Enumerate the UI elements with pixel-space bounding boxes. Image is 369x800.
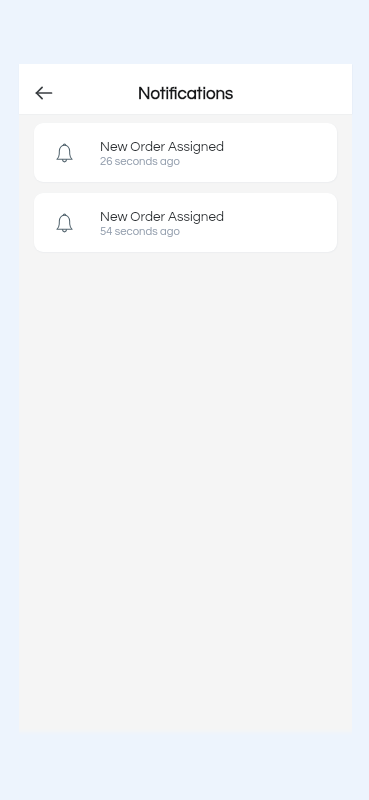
button[interactable]: New Order Assigned — [34, 193, 337, 252]
staticText: 54 seconds ago — [100, 226, 180, 238]
button[interactable]: New Order Assigned — [34, 123, 337, 182]
staticText: 26 seconds ago — [100, 156, 180, 168]
staticText: New Order Assigned — [100, 140, 224, 154]
button[interactable]: Back — [22, 71, 66, 115]
staticText: Notifications — [138, 85, 234, 103]
staticText: New Order Assigned — [100, 210, 224, 224]
